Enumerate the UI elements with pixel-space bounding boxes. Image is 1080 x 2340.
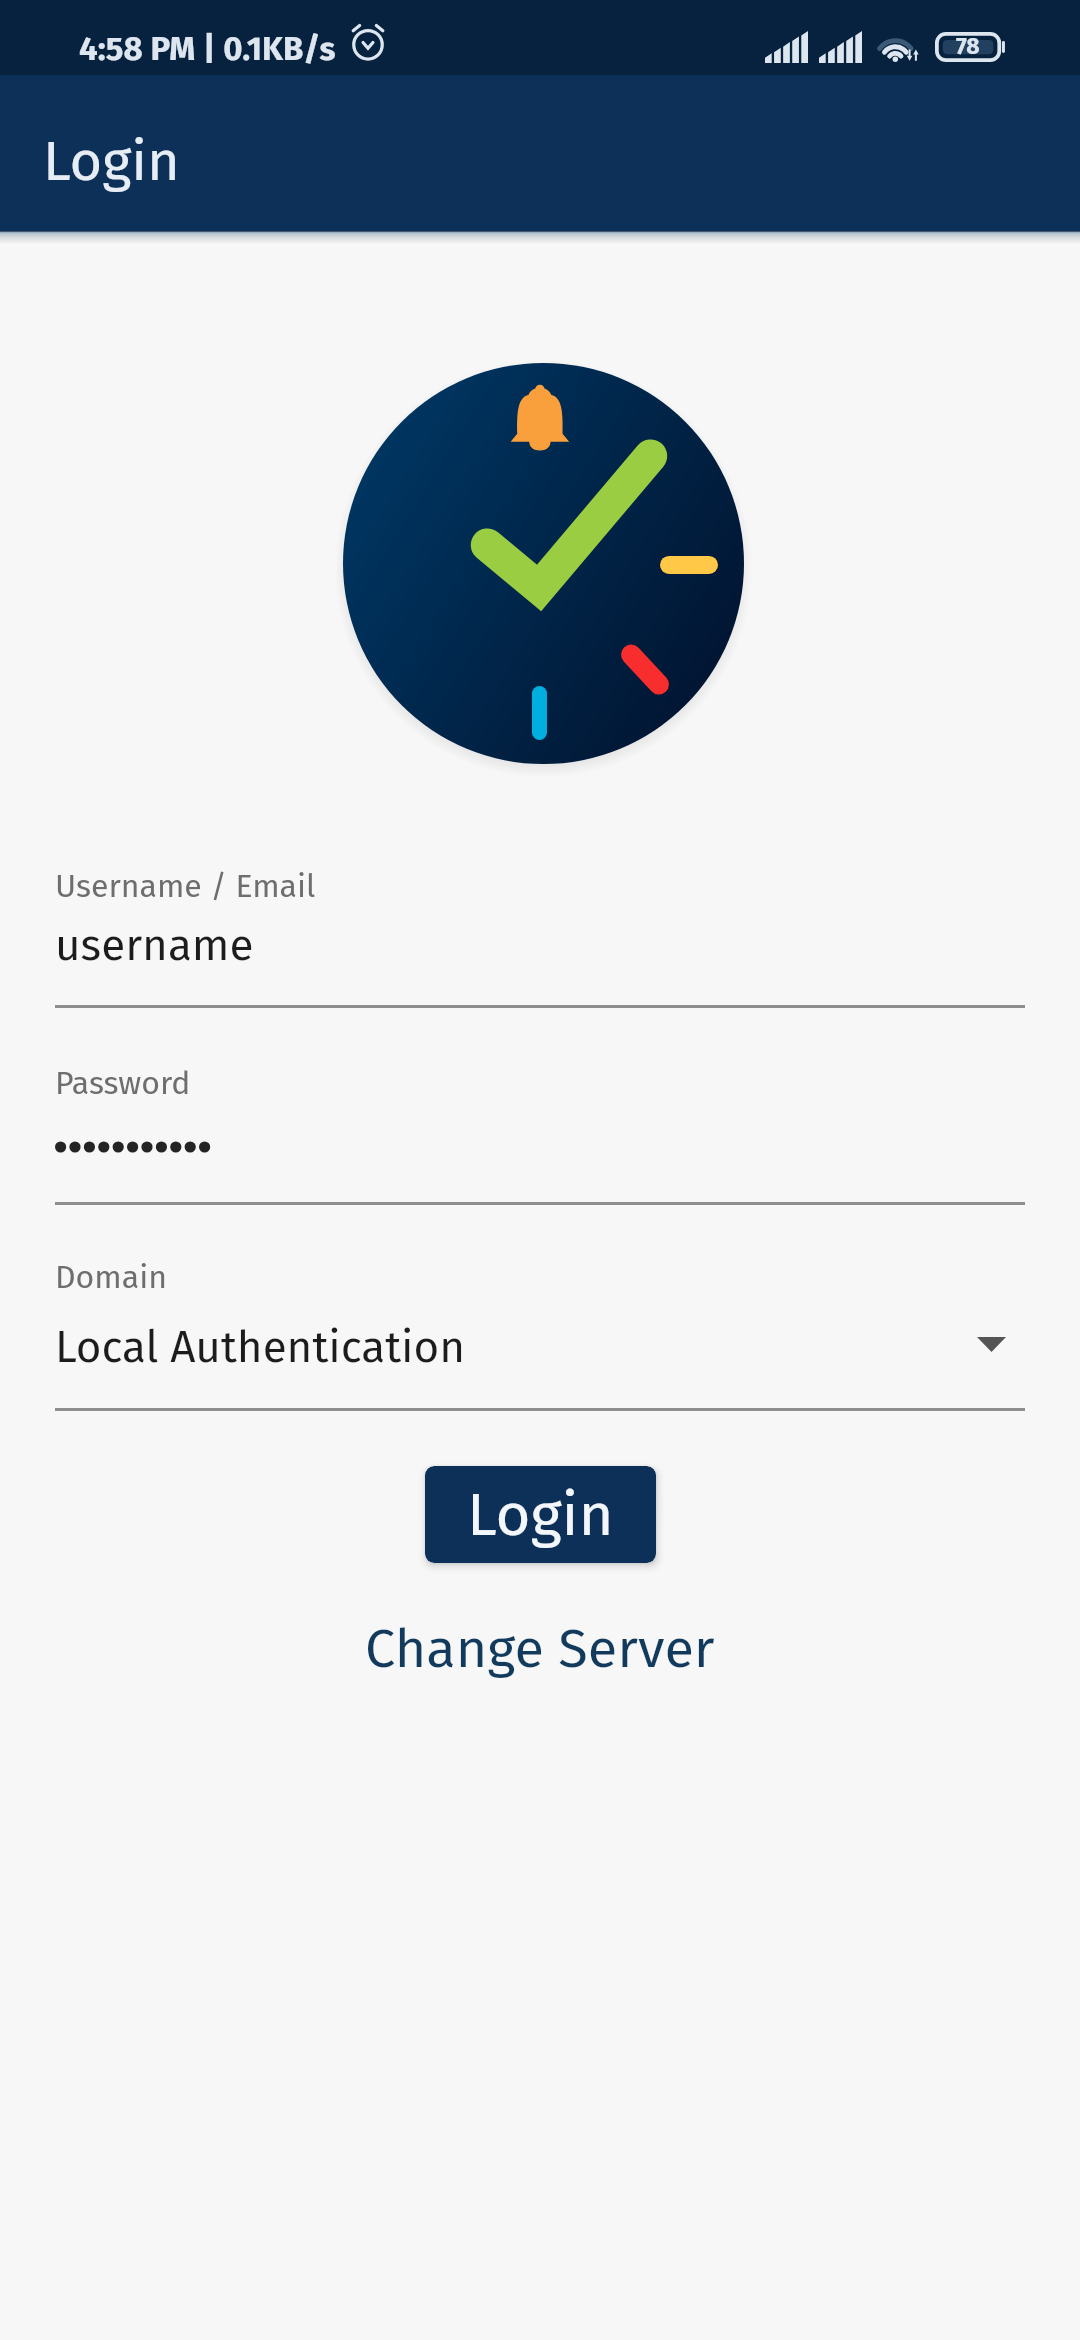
staticText: Local Authentication <box>55 1321 465 1374</box>
staticText: Username / Email <box>55 867 316 905</box>
other: Alarm <box>349 22 387 60</box>
button[interactable]: Change Server <box>339 1603 741 1696</box>
other: Mobile signal <box>765 30 808 63</box>
other: Wi-Fi <box>876 31 918 62</box>
staticText: 4:58 PM | 0.1KB/s <box>79 29 336 69</box>
other: App logo <box>343 363 744 764</box>
button[interactable]: Username / Email <box>55 859 1025 1008</box>
staticText: username <box>55 919 254 972</box>
button[interactable]: Select domain <box>955 1308 1027 1380</box>
staticText: Login <box>467 1479 614 1551</box>
button[interactable]: Password <box>55 1056 1025 1205</box>
staticText: Password <box>55 1064 191 1102</box>
staticText: Login <box>43 128 180 195</box>
staticText: Change Server <box>365 1617 715 1682</box>
staticText: Domain <box>55 1258 167 1296</box>
button[interactable]: Domain <box>55 1250 1025 1411</box>
other: Battery 78 percent <box>935 32 1005 62</box>
other: Mobile signal <box>819 30 862 63</box>
button[interactable]: Login <box>425 1466 656 1563</box>
staticText: 78 <box>956 32 980 60</box>
